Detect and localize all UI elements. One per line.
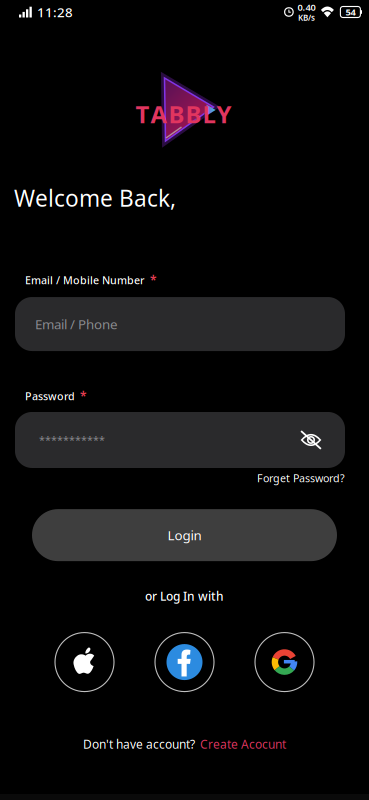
- staticText: Email / Mobile Number: [25, 273, 145, 287]
- staticText: *: [150, 272, 157, 288]
- button[interactable]: Forget Password?: [0, 468, 369, 487]
- button[interactable]: Create Acocunt: [200, 736, 286, 752]
- staticText: L: [202, 98, 215, 130]
- button[interactable]: Sign in with Apple: [53, 631, 115, 693]
- staticText: Password: [25, 389, 75, 403]
- staticText: Create Acocunt: [200, 736, 286, 752]
- staticText: Login: [167, 526, 201, 544]
- staticText: Forget Password?: [257, 471, 345, 485]
- staticText: KB/s: [298, 12, 315, 23]
- staticText: Don't have account?: [83, 736, 195, 752]
- staticText: B: [185, 98, 201, 130]
- staticText: or Log In with: [145, 588, 224, 604]
- button[interactable]: Sign in with Google: [253, 631, 315, 693]
- staticText: ***********: [39, 433, 105, 447]
- staticText: T: [135, 98, 149, 130]
- staticText: 0.40: [297, 1, 315, 13]
- staticText: Y: [216, 98, 231, 130]
- staticText: A: [150, 98, 167, 130]
- staticText: Welcome Back,: [14, 183, 176, 213]
- staticText: 11:28: [37, 3, 73, 21]
- staticText: 54: [345, 6, 355, 18]
- button[interactable]: Login: [0, 509, 369, 561]
- staticText: Email / Phone: [35, 315, 118, 333]
- staticText: *: [80, 388, 87, 404]
- staticText: B: [168, 98, 184, 130]
- button[interactable]: Sign in with Facebook: [153, 631, 215, 693]
